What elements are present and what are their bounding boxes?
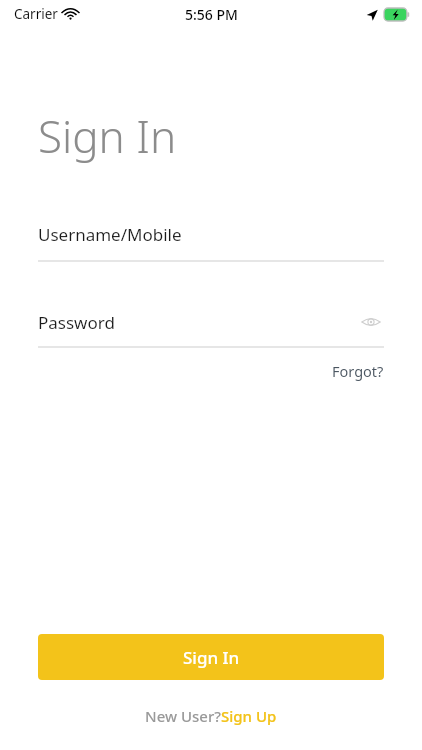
button[interactable]: Forgot? bbox=[332, 361, 384, 381]
staticText: New User?Sign Up bbox=[145, 706, 277, 726]
staticText: Carrier bbox=[14, 5, 58, 23]
button[interactable]: Sign In bbox=[38, 634, 384, 680]
staticText: Username/Mobile bbox=[38, 223, 182, 246]
staticText: Password bbox=[38, 311, 115, 334]
button[interactable]: Show password bbox=[358, 309, 384, 335]
staticText: 5:56 PM bbox=[185, 5, 238, 24]
button[interactable]: New User?Sign Up bbox=[145, 706, 277, 726]
staticText: Sign In bbox=[38, 106, 177, 166]
staticText: Forgot? bbox=[332, 361, 384, 381]
staticText: Sign In bbox=[183, 646, 240, 669]
